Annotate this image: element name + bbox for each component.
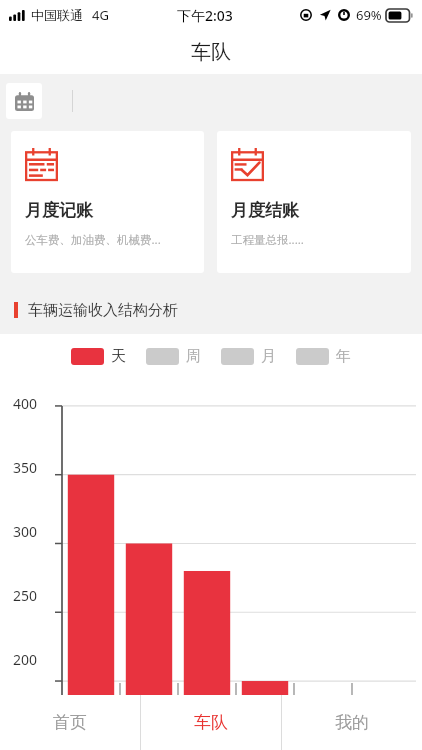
staticText: 350 xyxy=(13,458,38,477)
button[interactable]: 天 xyxy=(71,347,126,366)
staticText: 月度记账 xyxy=(25,200,93,221)
staticText: 车队 xyxy=(194,712,228,733)
staticText: 69% xyxy=(356,6,382,24)
staticText: 4G xyxy=(92,6,109,24)
staticText: 车队 xyxy=(191,40,231,65)
staticText: 300 xyxy=(13,522,38,541)
button[interactable]: 年 xyxy=(296,347,351,366)
staticText: 首页 xyxy=(53,712,87,733)
staticText: 250 xyxy=(13,586,38,605)
button[interactable]: 月度结账 xyxy=(217,131,411,273)
staticText: 200 xyxy=(13,650,38,669)
staticText: 车辆运输收入结构分析 xyxy=(28,301,178,320)
staticText: 月 xyxy=(261,347,276,366)
button[interactable]: 月 xyxy=(221,347,276,366)
staticText: 天 xyxy=(111,347,126,366)
button[interactable]: 首页 xyxy=(0,695,140,750)
staticText: 公车费、加油费、机械费... xyxy=(25,232,161,248)
staticText: 年 xyxy=(336,347,351,366)
button[interactable]: 我的 xyxy=(282,695,422,750)
staticText: 周 xyxy=(186,347,201,366)
staticText: 下午2:03 xyxy=(177,6,233,25)
staticText: 工程量总报..... xyxy=(231,232,304,248)
button[interactable]: 周 xyxy=(146,347,201,366)
button[interactable]: 车队 xyxy=(141,695,281,750)
button[interactable]: 月度记账 xyxy=(11,131,204,273)
staticText: 我的 xyxy=(335,712,369,733)
staticText: 中国联通 xyxy=(31,7,83,23)
staticText: 400 xyxy=(13,394,38,413)
staticText: 月度结账 xyxy=(231,200,299,221)
button[interactable]: 日历 xyxy=(6,83,42,119)
